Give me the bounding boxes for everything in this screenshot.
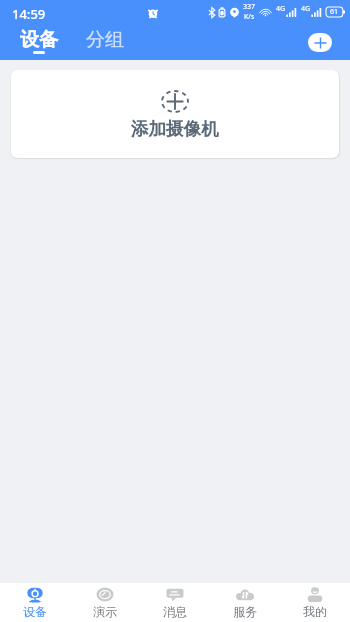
button[interactable]: 分组 (81, 24, 129, 60)
staticText: 14:59 (12, 5, 46, 23)
button[interactable]: 设备 (0, 583, 70, 622)
button[interactable]: 演示 (70, 583, 140, 622)
button[interactable]: 消息 (140, 583, 210, 622)
staticText: K/s (244, 12, 255, 22)
staticText: 分组 (86, 28, 124, 52)
button[interactable]: Add device (308, 33, 332, 52)
button[interactable]: 我的 (280, 583, 350, 622)
staticText: 消息 (163, 604, 187, 619)
staticText: 设备 (20, 28, 58, 52)
staticText: 我的 (303, 604, 327, 619)
staticText: 4G (301, 4, 311, 14)
staticText: 演示 (93, 604, 117, 619)
button[interactable]: 服务 (210, 583, 280, 622)
staticText: 服务 (233, 604, 257, 619)
staticText: 4G (276, 4, 286, 14)
staticText: 337 (243, 2, 256, 12)
staticText: 设备 (23, 604, 47, 619)
staticText: 添加摄像机 (131, 118, 219, 140)
button[interactable]: 设备 (15, 24, 63, 60)
button[interactable]: 添加摄像机 (11, 70, 339, 158)
staticText: 61 (330, 7, 339, 17)
